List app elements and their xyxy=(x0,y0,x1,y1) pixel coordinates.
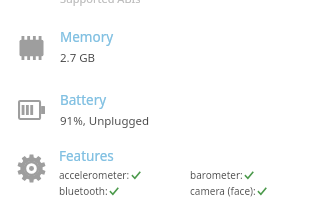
staticText: barometer: xyxy=(190,168,243,182)
staticText: accelerometer: xyxy=(59,168,130,182)
staticText: 91%, Unplugged xyxy=(60,113,150,129)
button[interactable]: Supported ABIs xyxy=(60,0,141,6)
other: Features xyxy=(17,154,46,183)
button[interactable]: Features xyxy=(0,147,320,200)
button[interactable]: Battery xyxy=(0,91,320,149)
other: Battery xyxy=(18,100,45,120)
staticText: camera (face): xyxy=(190,184,256,198)
staticText: Memory xyxy=(60,28,114,46)
staticText: Battery xyxy=(60,91,107,109)
staticText: Features xyxy=(59,147,114,165)
staticText: 2.7 GB xyxy=(60,50,96,66)
staticText: bluetooth: xyxy=(59,184,108,198)
staticText: Supported ABIs xyxy=(60,0,141,6)
button[interactable]: Memory xyxy=(0,28,320,86)
other: Memory xyxy=(18,36,45,60)
